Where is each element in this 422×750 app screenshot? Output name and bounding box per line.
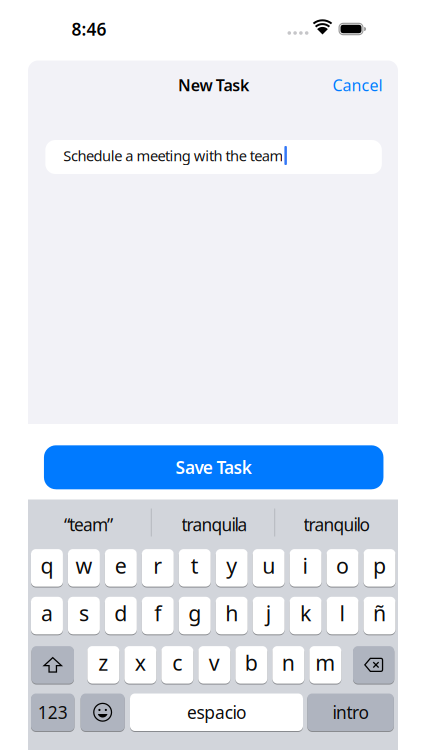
staticText: y	[226, 551, 237, 579]
button[interactable]: tranquilo	[276, 503, 396, 545]
button[interactable]: t	[179, 549, 211, 587]
staticText: 123	[38, 701, 68, 724]
staticText: Save Task	[176, 456, 252, 479]
button[interactable]: ñ	[363, 596, 395, 635]
staticText: n	[282, 648, 295, 676]
button[interactable]: g	[179, 596, 211, 635]
button[interactable]: h	[216, 596, 248, 635]
staticText: tranquilo	[303, 513, 369, 536]
staticText: s	[79, 599, 89, 627]
staticText: tranquila	[181, 513, 247, 536]
staticText: m	[315, 648, 335, 676]
staticText: e	[115, 551, 127, 579]
staticText: z	[98, 648, 108, 676]
staticText: t	[191, 551, 199, 579]
staticText: g	[188, 599, 201, 627]
button[interactable]: u	[253, 549, 285, 587]
button[interactable]: j	[253, 596, 285, 635]
button[interactable]: p	[363, 549, 395, 587]
button[interactable]: m	[309, 646, 341, 684]
button[interactable]: q	[31, 549, 63, 587]
staticText: d	[114, 599, 127, 627]
button[interactable]: “team”	[28, 503, 148, 545]
button[interactable]: x	[124, 646, 156, 684]
button[interactable]: l	[327, 596, 359, 635]
staticText: r	[153, 551, 162, 579]
staticText: j	[266, 599, 272, 627]
button[interactable]: o	[327, 549, 359, 587]
button[interactable]: s	[68, 596, 100, 635]
button[interactable]: w	[68, 549, 100, 587]
staticText: o	[336, 551, 349, 579]
staticText: 8:46	[71, 17, 106, 40]
staticText: w	[75, 551, 92, 579]
button[interactable]: b	[235, 646, 267, 684]
button[interactable]: r	[142, 549, 174, 587]
button[interactable]: Cancel	[312, 70, 402, 100]
button[interactable]: v	[198, 646, 230, 684]
button[interactable]: y	[216, 549, 248, 587]
button[interactable]: c	[161, 646, 193, 684]
button[interactable]: intro	[307, 693, 394, 731]
staticText: h	[225, 599, 238, 627]
staticText: c	[172, 648, 182, 676]
button[interactable]: 123	[31, 693, 74, 731]
staticText: v	[209, 648, 220, 676]
staticText: Schedule a meeting with the team	[63, 146, 283, 165]
button[interactable]	[81, 693, 125, 731]
button[interactable]: f	[142, 596, 174, 635]
staticText: i	[303, 551, 309, 579]
button[interactable]: a	[31, 596, 63, 635]
staticText: intro	[333, 701, 369, 724]
staticText: ñ	[373, 599, 386, 627]
button[interactable]: tranquila	[154, 503, 274, 545]
staticText: l	[340, 599, 346, 627]
staticText: espacio	[187, 701, 246, 724]
staticText: x	[135, 648, 146, 676]
button[interactable]	[31, 646, 74, 684]
button[interactable]: e	[105, 549, 137, 587]
button[interactable]: z	[87, 646, 119, 684]
button[interactable]: d	[105, 596, 137, 635]
button[interactable]: espacio	[130, 693, 303, 731]
staticText: u	[262, 551, 275, 579]
button[interactable]	[353, 646, 394, 684]
staticText: New Task	[178, 74, 249, 96]
staticText: a	[41, 599, 53, 627]
button[interactable]: Save Task	[44, 445, 383, 489]
button[interactable]: Schedule a meeting with the team	[45, 140, 382, 174]
staticText: Cancel	[332, 74, 382, 96]
staticText: k	[300, 599, 311, 627]
staticText: q	[40, 551, 53, 579]
staticText: “team”	[64, 513, 113, 536]
button[interactable]: n	[272, 646, 304, 684]
button[interactable]: k	[290, 596, 322, 635]
staticText: p	[373, 551, 386, 579]
staticText: f	[154, 599, 161, 627]
staticText: b	[245, 648, 258, 676]
button[interactable]: i	[290, 549, 322, 587]
